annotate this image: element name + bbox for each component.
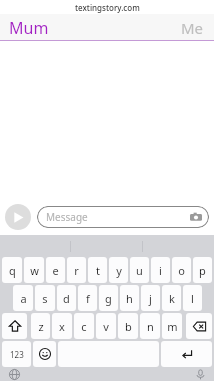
button[interactable]: x bbox=[52, 313, 72, 339]
button[interactable]: c bbox=[74, 313, 94, 339]
button[interactable]: i bbox=[151, 257, 170, 283]
staticText: u bbox=[136, 263, 143, 278]
staticText: y bbox=[116, 263, 122, 278]
staticText: j bbox=[149, 291, 152, 306]
staticText: Message bbox=[46, 210, 88, 224]
staticText: 123 bbox=[10, 349, 24, 360]
staticText: a bbox=[20, 291, 27, 306]
button[interactable]: Backspace bbox=[186, 313, 212, 339]
staticText: x bbox=[59, 319, 65, 334]
button[interactable]: o bbox=[172, 257, 191, 283]
staticText: g bbox=[105, 291, 112, 306]
button[interactable]: d bbox=[57, 285, 76, 311]
staticText: l bbox=[191, 291, 194, 306]
staticText: r bbox=[74, 263, 79, 278]
button[interactable]: t bbox=[88, 257, 107, 283]
button[interactable]: m bbox=[162, 313, 182, 339]
button[interactable]: Emoji bbox=[33, 341, 56, 367]
button[interactable]: Dictate bbox=[193, 367, 207, 381]
button[interactable]: Mum bbox=[9, 17, 49, 39]
staticText: t bbox=[96, 263, 100, 278]
button[interactable]: n bbox=[140, 313, 160, 339]
button[interactable]: w bbox=[24, 257, 44, 283]
staticText: s bbox=[42, 291, 48, 306]
staticText: q bbox=[9, 263, 16, 278]
staticText: k bbox=[169, 291, 175, 306]
button[interactable]: Change keyboard bbox=[7, 367, 21, 381]
button[interactable]: Me bbox=[181, 18, 204, 38]
staticText: b bbox=[125, 319, 132, 334]
button[interactable]: s bbox=[35, 285, 55, 311]
staticText: n bbox=[147, 319, 154, 334]
button[interactable]: Shift bbox=[2, 313, 27, 339]
button[interactable]: j bbox=[141, 285, 160, 311]
staticText: w bbox=[30, 263, 39, 278]
button[interactable]: a bbox=[13, 285, 33, 311]
staticText: z bbox=[38, 319, 44, 334]
button[interactable]: Camera bbox=[189, 210, 203, 224]
button[interactable]: r bbox=[67, 257, 86, 283]
staticText: m bbox=[167, 319, 178, 334]
button[interactable]: z bbox=[31, 313, 50, 339]
button[interactable]: b bbox=[118, 313, 138, 339]
staticText: i bbox=[159, 263, 162, 278]
staticText: e bbox=[52, 263, 59, 278]
staticText: h bbox=[126, 291, 133, 306]
staticText: f bbox=[86, 291, 90, 306]
button[interactable]: l bbox=[183, 285, 202, 311]
staticText: Mum bbox=[9, 17, 49, 39]
button[interactable]: y bbox=[109, 257, 128, 283]
button[interactable]: v bbox=[96, 313, 116, 339]
staticText: c bbox=[81, 319, 87, 334]
staticText: Me bbox=[181, 18, 204, 38]
button[interactable]: u bbox=[130, 257, 149, 283]
button[interactable]: k bbox=[162, 285, 181, 311]
button[interactable]: e bbox=[46, 257, 65, 283]
button[interactable]: Send bbox=[5, 204, 31, 230]
staticText: o bbox=[178, 263, 185, 278]
staticText: p bbox=[199, 263, 206, 278]
button[interactable]: 123 bbox=[2, 341, 31, 367]
button[interactable]: f bbox=[78, 285, 97, 311]
button[interactable]: p bbox=[193, 257, 212, 283]
button[interactable]: Message bbox=[37, 206, 209, 228]
button[interactable]: q bbox=[2, 257, 22, 283]
staticText: v bbox=[103, 319, 109, 334]
staticText: d bbox=[63, 291, 70, 306]
button[interactable]: h bbox=[120, 285, 139, 311]
staticText: textingstory.com bbox=[75, 2, 140, 13]
button[interactable]: Return bbox=[161, 341, 212, 367]
button[interactable]: g bbox=[99, 285, 118, 311]
